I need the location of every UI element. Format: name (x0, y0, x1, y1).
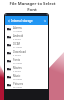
staticText: 8 items (13, 38, 21, 41)
staticText: 48 items (13, 78, 23, 81)
staticText: Fonts (13, 58, 20, 62)
staticText: Internal storage (11, 19, 33, 23)
staticText: Download (13, 50, 26, 54)
staticText: Movies (13, 66, 22, 70)
staticText: 5 items (13, 54, 21, 57)
button[interactable]: Download (5, 49, 48, 57)
button[interactable]: Navigate up (7, 19, 10, 22)
staticText: 22 items (13, 62, 23, 65)
staticText: DCIM (13, 42, 21, 46)
button[interactable]: Fonts (5, 57, 48, 65)
button[interactable]: Movies (5, 65, 48, 73)
button[interactable]: DCIM (5, 41, 48, 49)
staticText: 96 items (13, 86, 23, 89)
staticText: 12 items (13, 30, 23, 33)
button[interactable]: Alarms (5, 25, 48, 33)
staticText: Music (13, 74, 21, 78)
staticText: File Manager to Select (9, 1, 56, 7)
staticText: Pictures (13, 82, 24, 86)
staticText: 31 items (13, 46, 23, 49)
button[interactable]: Pictures (5, 81, 48, 89)
staticText: Alarms (13, 26, 22, 30)
staticText: Android (13, 34, 24, 38)
button[interactable]: Android (5, 33, 48, 41)
button[interactable]: Search (43, 19, 46, 22)
button[interactable]: Music (5, 73, 48, 81)
staticText: 3 items (13, 70, 21, 73)
staticText: Font (27, 7, 37, 13)
